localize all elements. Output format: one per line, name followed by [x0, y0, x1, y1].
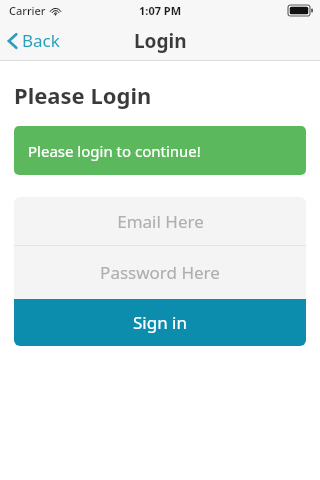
staticText: Back: [22, 29, 60, 52]
staticText: Login: [134, 28, 187, 54]
staticText: 1:07 PM: [139, 3, 182, 18]
button[interactable]: Email Here: [14, 197, 306, 245]
staticText: Password Here: [100, 261, 220, 284]
staticText: Carrier: [9, 3, 46, 18]
button[interactable]: Sign in: [14, 299, 306, 346]
staticText: Please Login: [14, 80, 152, 110]
staticText: Please login to continue!: [28, 141, 201, 161]
button[interactable]: Please login to continue!: [14, 126, 306, 175]
staticText: Sign in: [133, 311, 187, 334]
button[interactable]: Password Here: [14, 246, 306, 299]
button[interactable]: Back: [0, 23, 70, 58]
staticText: Email Here: [117, 210, 204, 233]
